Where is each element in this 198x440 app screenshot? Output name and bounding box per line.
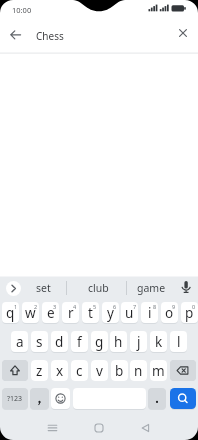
button[interactable] — [30, 388, 49, 409]
staticText: y — [107, 304, 114, 322]
button[interactable] — [44, 420, 61, 436]
button[interactable] — [137, 420, 154, 436]
button[interactable] — [51, 388, 70, 409]
button[interactable]: h — [110, 331, 127, 352]
staticText: f — [77, 333, 82, 351]
button[interactable]: a — [11, 331, 28, 352]
button[interactable]: t — [82, 302, 99, 323]
staticText: 5 — [93, 303, 97, 310]
staticText: p — [185, 304, 194, 322]
staticText: 3 — [53, 303, 57, 310]
button[interactable]: club — [80, 279, 116, 297]
staticText: set — [36, 281, 51, 295]
staticText: game — [137, 281, 166, 295]
button[interactable]: ?123 — [2, 388, 28, 409]
button[interactable] — [2, 360, 28, 381]
button[interactable]: y — [102, 302, 119, 323]
staticText: k — [155, 333, 163, 351]
button[interactable]: j — [130, 331, 147, 352]
staticText: m — [152, 362, 165, 380]
staticText: o — [165, 304, 174, 322]
button[interactable]: g — [91, 331, 108, 352]
staticText: s — [36, 333, 43, 351]
staticText: a — [16, 333, 24, 351]
staticText: v — [96, 362, 103, 380]
staticText: 7 — [133, 303, 137, 310]
button[interactable]: s — [31, 331, 48, 352]
staticText: Chess — [36, 29, 64, 43]
staticText: q — [6, 304, 15, 322]
button[interactable] — [170, 388, 196, 409]
button[interactable]: p — [181, 302, 198, 323]
staticText: 2 — [34, 303, 38, 310]
button[interactable]: v — [91, 360, 108, 381]
staticText: t — [88, 304, 93, 322]
staticText: x — [56, 362, 64, 380]
button[interactable]: b — [111, 360, 128, 381]
button[interactable] — [170, 360, 196, 381]
staticText: z — [36, 362, 43, 380]
button[interactable]: r — [62, 302, 79, 323]
staticText: g — [95, 333, 104, 351]
button[interactable]: i — [141, 302, 158, 323]
staticText: w — [25, 304, 36, 322]
staticText: club — [88, 281, 109, 295]
button[interactable]: o — [161, 302, 178, 323]
staticText: ?123 — [7, 394, 23, 404]
staticText: n — [134, 362, 143, 380]
staticText: h — [114, 333, 123, 351]
button[interactable]: d — [51, 331, 68, 352]
staticText: 9 — [172, 303, 176, 310]
staticText: 10:00 — [12, 5, 32, 15]
button[interactable] — [175, 25, 191, 41]
button[interactable]: m — [150, 360, 167, 381]
button[interactable] — [91, 420, 107, 436]
button[interactable] — [4, 27, 26, 43]
button[interactable]: x — [51, 360, 68, 381]
button[interactable] — [178, 278, 194, 296]
button[interactable]: w — [22, 302, 39, 323]
button[interactable]: e — [42, 302, 59, 323]
staticText: r — [68, 304, 74, 322]
staticText: 1 — [14, 303, 18, 310]
staticText: i — [148, 304, 152, 322]
button[interactable]: k — [150, 331, 167, 352]
staticText: 8 — [153, 303, 157, 310]
button[interactable] — [148, 388, 166, 409]
button[interactable]: z — [31, 360, 48, 381]
staticText: u — [125, 304, 134, 322]
staticText: 0 — [192, 303, 196, 310]
button[interactable]: q — [2, 302, 19, 323]
button[interactable]: n — [130, 360, 147, 381]
button[interactable]: f — [71, 331, 88, 352]
staticText: j — [137, 333, 141, 351]
staticText: 6 — [113, 303, 117, 310]
button[interactable]: u — [121, 302, 138, 323]
button[interactable]: l — [170, 331, 187, 352]
button[interactable] — [6, 281, 21, 296]
staticText: l — [177, 333, 181, 351]
button[interactable]: c — [71, 360, 88, 381]
staticText: e — [47, 304, 55, 322]
staticText: d — [55, 333, 64, 351]
staticText: 4 — [73, 303, 77, 310]
staticText: c — [76, 362, 83, 380]
button[interactable]: set — [25, 279, 61, 297]
button[interactable]: game — [133, 279, 169, 297]
staticText: b — [115, 362, 124, 380]
